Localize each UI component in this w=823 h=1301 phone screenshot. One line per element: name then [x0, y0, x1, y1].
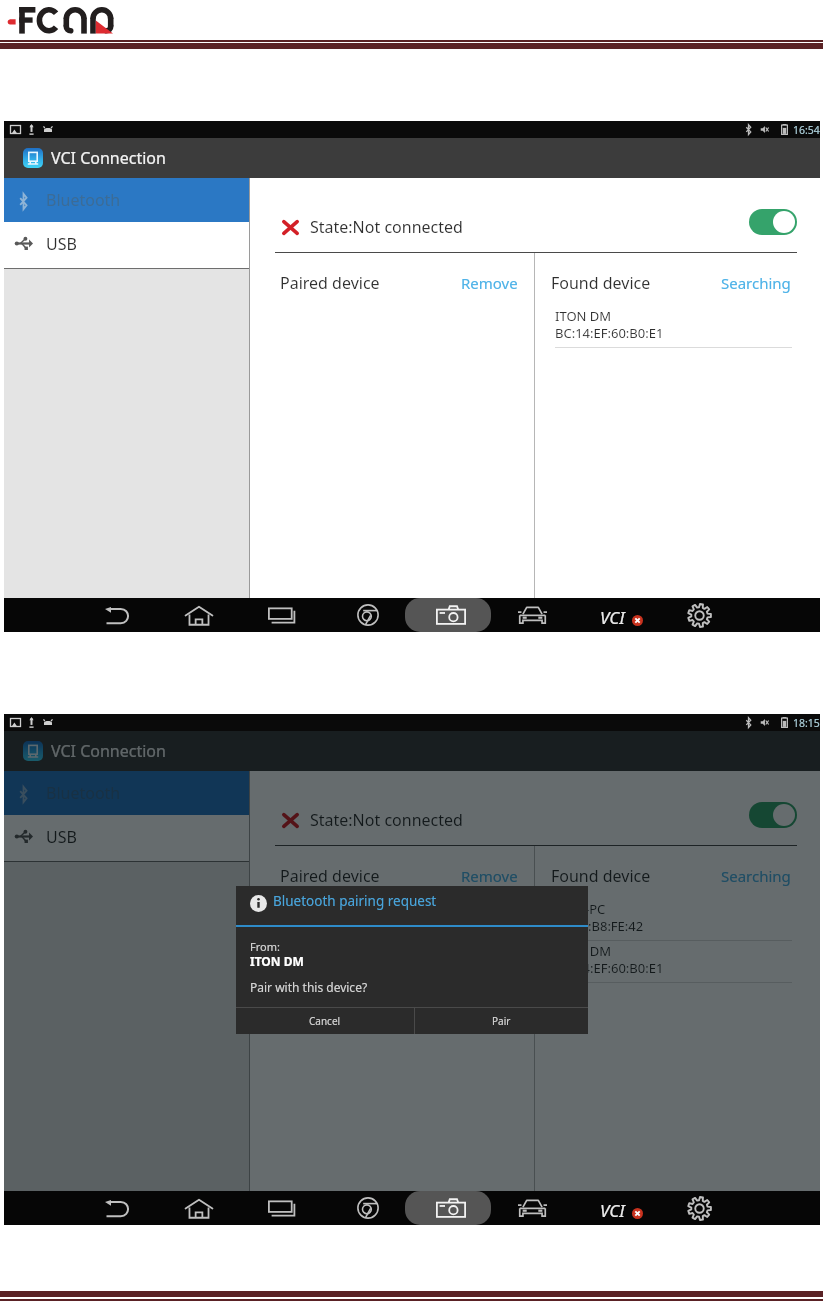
staticText: Found device	[551, 865, 651, 887]
staticText: 16:54	[793, 123, 820, 137]
button[interactable]: Browser	[346, 1191, 390, 1225]
staticText: Paired device	[280, 272, 380, 294]
button[interactable]: ITON DM	[535, 306, 820, 348]
staticText: BC:14:EF:60:B0:E1	[555, 324, 664, 342]
staticText: ITON DM	[555, 307, 612, 325]
button[interactable]: Bluetooth	[4, 178, 249, 222]
staticText: Bluetooth	[46, 782, 121, 804]
staticText: BC:14:EF:60:B0:E1	[555, 959, 664, 977]
staticText: Pair with this device?	[250, 979, 368, 995]
button[interactable]: VCI status	[590, 1191, 652, 1225]
staticText: State:Not connected	[310, 216, 463, 238]
button[interactable]: Searching	[721, 866, 791, 886]
button[interactable]: Back	[95, 1191, 139, 1225]
button[interactable]: Bluetooth switch	[749, 802, 797, 828]
button[interactable]: Screenshot	[429, 1191, 473, 1225]
staticText: Pair	[492, 1014, 511, 1028]
button[interactable]: VCI status	[590, 598, 652, 632]
staticText: VCI	[600, 1199, 625, 1222]
button[interactable]: Cancel	[236, 1008, 414, 1034]
button[interactable]: Searching	[721, 273, 791, 293]
staticText: Cancel	[309, 1014, 341, 1028]
button[interactable]: Home	[177, 1191, 221, 1225]
staticText: ITON DM	[555, 942, 612, 960]
staticText: Searching	[721, 866, 791, 886]
staticText: VCI Connection	[51, 740, 166, 762]
staticText: 18:15	[793, 716, 820, 730]
button[interactable]: Browser	[346, 598, 390, 632]
button[interactable]: Home	[177, 598, 221, 632]
button[interactable]: Recent apps	[261, 598, 305, 632]
staticText: VCI	[600, 606, 625, 629]
staticText: VCI Connection	[51, 147, 166, 169]
button[interactable]: Bluetooth	[4, 771, 249, 815]
staticText: State:Not connected	[310, 809, 463, 831]
button[interactable]: ITON DM	[535, 941, 820, 983]
staticText: ITON DM	[250, 953, 304, 969]
staticText: 50:E6:B8:FE:42	[555, 917, 644, 935]
button[interactable]: ALEX-PC	[535, 899, 820, 941]
staticText: USB	[46, 233, 77, 255]
staticText: Remove	[461, 866, 518, 886]
staticText: From:	[250, 939, 280, 954]
button[interactable]: Back	[95, 598, 139, 632]
button[interactable]: Settings	[677, 598, 721, 632]
button[interactable]: Vehicle	[510, 598, 554, 632]
button[interactable]: Remove	[461, 273, 518, 293]
button[interactable]: Bluetooth switch	[749, 209, 797, 235]
staticText: ALEX-PC	[555, 900, 606, 918]
staticText: Remove	[461, 273, 518, 293]
button[interactable]: Settings	[677, 1191, 721, 1225]
staticText: Searching	[721, 273, 791, 293]
button[interactable]: Pair	[415, 1008, 588, 1034]
staticText: USB	[46, 826, 77, 848]
button[interactable]: Vehicle	[510, 1191, 554, 1225]
staticText: Bluetooth pairing request	[273, 892, 437, 910]
staticText: Paired device	[280, 865, 380, 887]
staticText: Found device	[551, 272, 651, 294]
button[interactable]: Recent apps	[261, 1191, 305, 1225]
button[interactable]: Remove	[461, 866, 518, 886]
button[interactable]: Screenshot	[429, 598, 473, 632]
staticText: Bluetooth	[46, 189, 121, 211]
button[interactable]: USB	[4, 222, 249, 268]
button[interactable]: USB	[4, 815, 249, 861]
